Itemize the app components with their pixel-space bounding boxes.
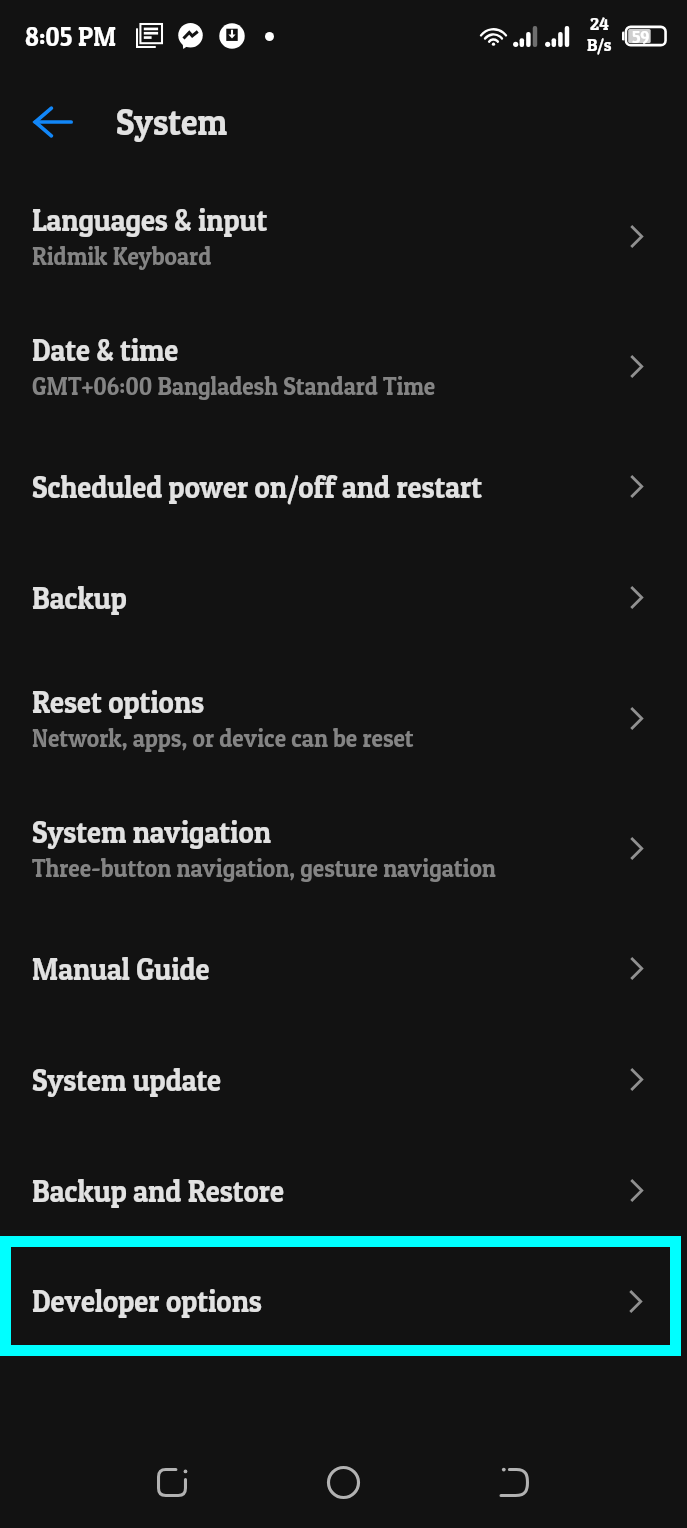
staticText: Network, apps, or device can be reset: [32, 723, 414, 753]
staticText: GMT+06:00 Bangladesh Standard Time: [32, 371, 435, 401]
staticText: Manual Guide: [32, 950, 210, 988]
button[interactable]: Back: [0, 79, 94, 165]
button[interactable]: Backup: [0, 542, 687, 653]
button[interactable]: Languages & input: [0, 171, 687, 301]
button[interactable]: System navigation: [0, 783, 687, 913]
staticText: Developer options: [32, 1282, 263, 1320]
button[interactable]: Recent apps: [86, 1411, 257, 1528]
button[interactable]: Backup and Restore: [0, 1135, 687, 1246]
staticText: B/s: [587, 34, 612, 55]
button[interactable]: Manual Guide: [0, 913, 687, 1024]
staticText: 24: [590, 13, 609, 34]
staticText: Reset options: [32, 683, 205, 721]
button[interactable]: Home: [257, 1411, 429, 1528]
staticText: Scheduled power on/off and restart: [32, 468, 482, 506]
staticText: System: [116, 99, 227, 144]
staticText: System update: [32, 1061, 222, 1099]
staticText: System navigation: [32, 813, 271, 851]
button[interactable]: Back: [429, 1411, 601, 1528]
staticText: 59: [632, 26, 650, 47]
staticText: Languages & input: [32, 201, 267, 239]
button[interactable]: Date & time: [0, 301, 687, 431]
staticText: Backup: [32, 579, 127, 617]
staticText: Three-button navigation, gesture navigat…: [32, 853, 496, 883]
button[interactable]: System update: [0, 1024, 687, 1135]
button[interactable]: Developer options: [0, 1236, 681, 1356]
staticText: Date & time: [32, 331, 179, 369]
button[interactable]: Scheduled power on/off and restart: [0, 431, 687, 542]
staticText: Backup and Restore: [32, 1172, 284, 1210]
button[interactable]: Reset options: [0, 653, 687, 783]
staticText: Ridmik Keyboard: [32, 241, 211, 271]
staticText: 8:05 PM: [25, 20, 116, 53]
